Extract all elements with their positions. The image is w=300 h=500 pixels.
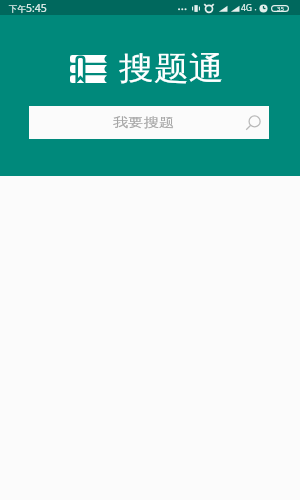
staticText: 4G [241,2,253,14]
button[interactable]: Search [237,107,265,138]
staticText: 下午 [9,4,26,15]
staticText: 我要搜题 [113,114,175,131]
button[interactable]: 我要搜题 [29,106,269,139]
staticText: 搜题通 [119,48,224,87]
staticText: 35 [277,5,284,12]
staticText: 5:45 [26,1,47,15]
